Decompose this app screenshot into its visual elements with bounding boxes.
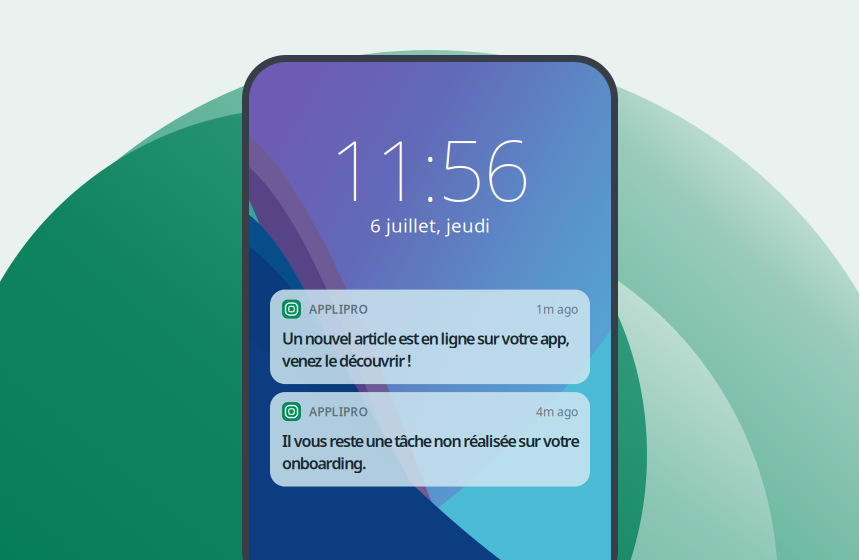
staticText: onboarding.	[282, 452, 366, 473]
staticText: 4m ago	[536, 404, 578, 419]
staticText: APPLIPRO	[309, 404, 367, 419]
staticText: Un nouvel article est en ligne sur votre…	[282, 328, 570, 349]
staticText: 11:56	[330, 114, 530, 224]
staticText: 6 juillet, jeudi	[370, 213, 490, 238]
staticText: 1m ago	[536, 301, 578, 317]
staticText: APPLIPRO	[309, 301, 367, 317]
button[interactable]: APPLIPRO	[270, 290, 590, 384]
button[interactable]: APPLIPRO	[270, 392, 590, 487]
staticText: venez le découvrir !	[282, 350, 411, 371]
staticText: Il vous reste une tâche non réalisée sur…	[282, 430, 579, 451]
